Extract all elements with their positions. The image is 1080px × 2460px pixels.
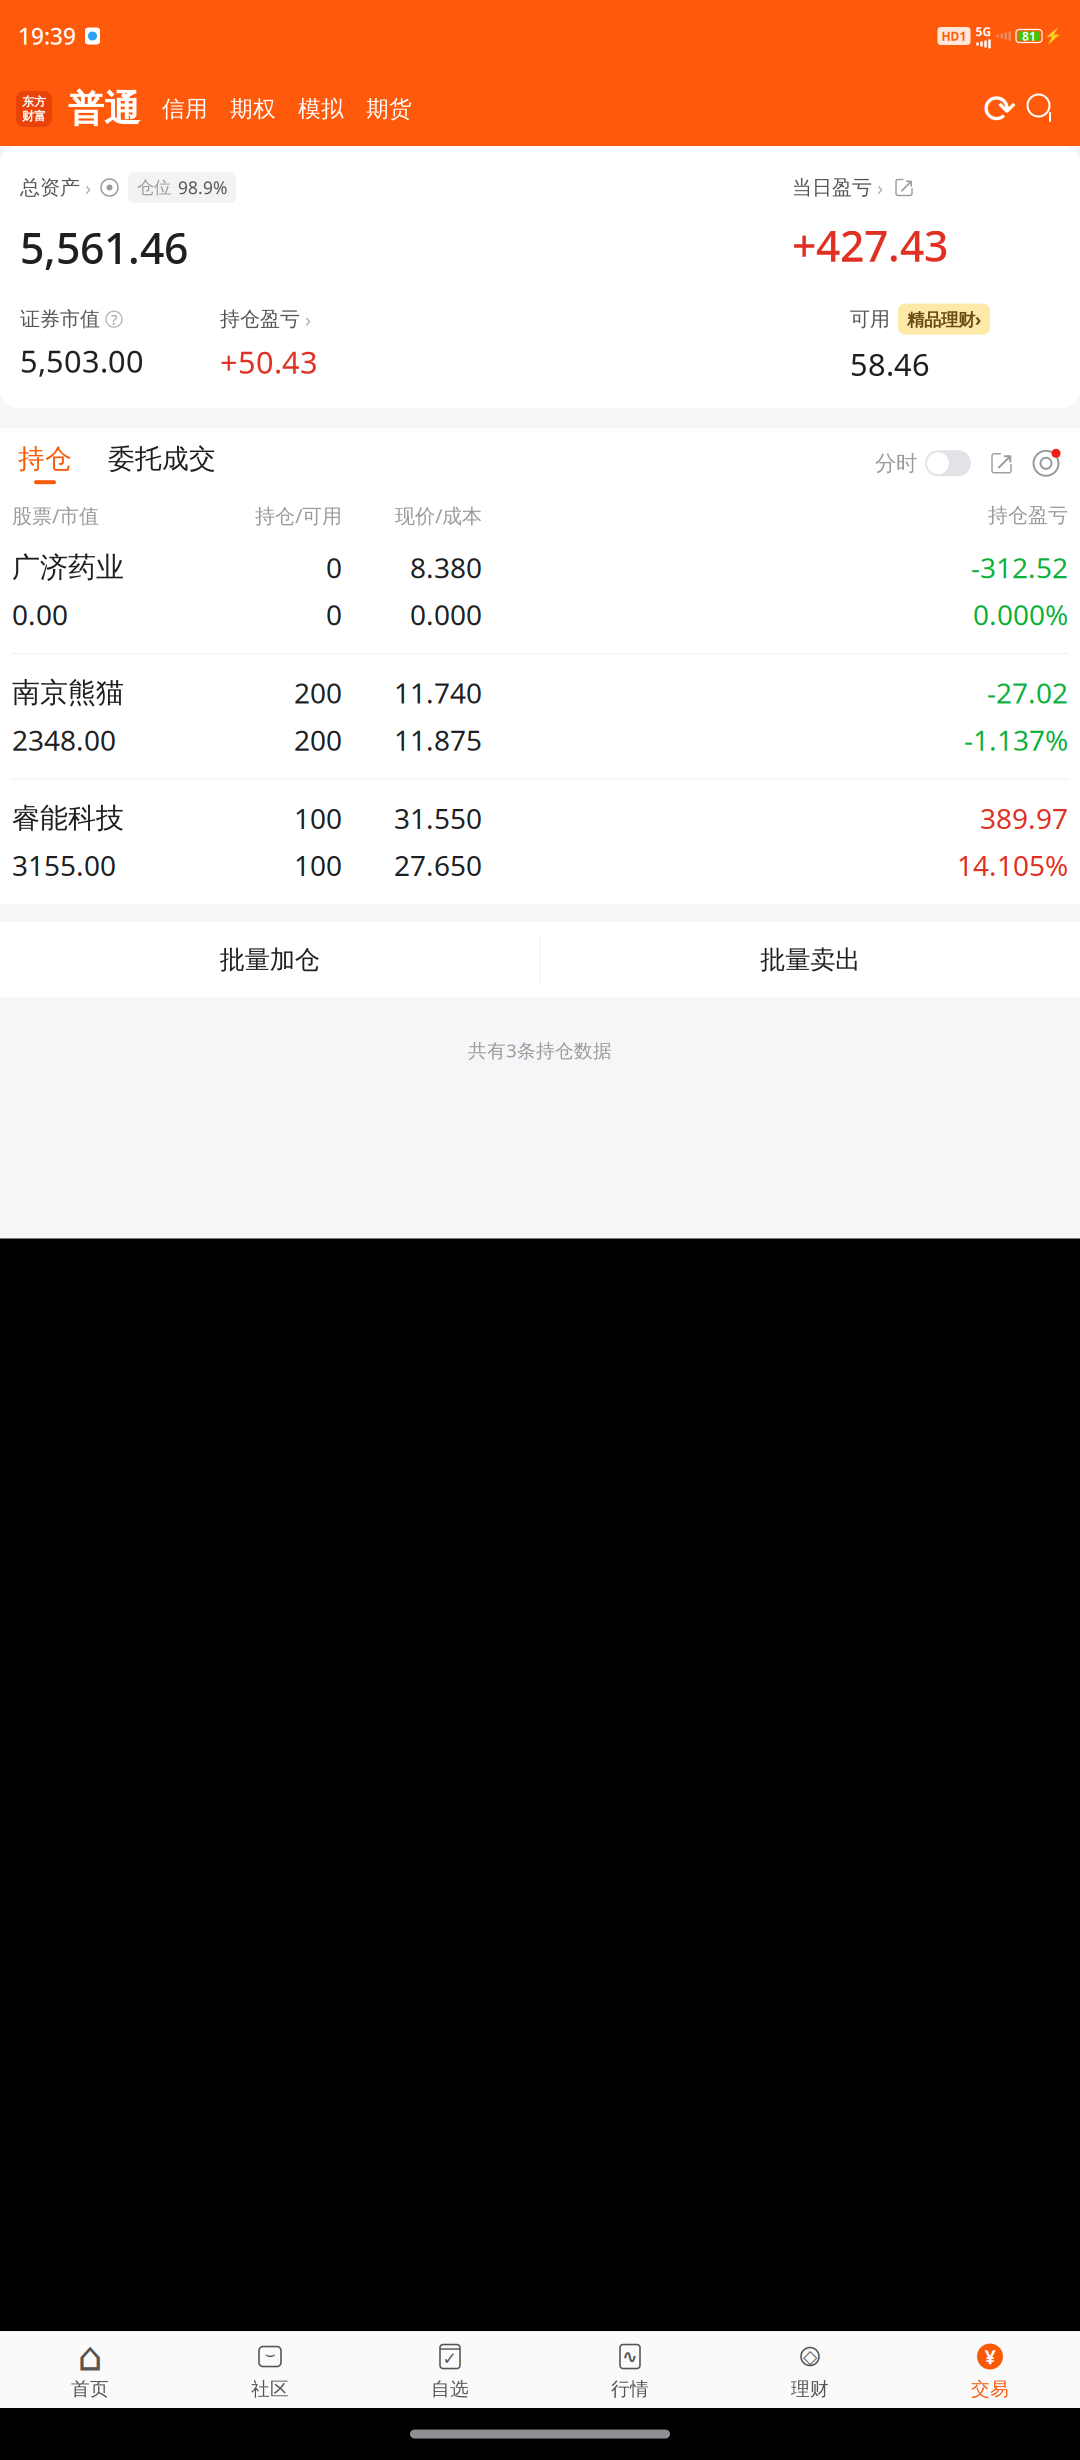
staticText: 14.105% — [957, 847, 1068, 884]
staticText: ↗ — [994, 447, 1014, 474]
staticText: 389.97 — [980, 799, 1068, 837]
staticText: 200 — [294, 674, 342, 711]
button[interactable]: ◇ — [720, 2340, 900, 2402]
staticText: 0.000% — [973, 596, 1068, 633]
staticText: 8.380 — [410, 549, 482, 586]
staticText: 广济药业 — [12, 550, 124, 584]
staticText: 批量卖出 — [760, 944, 860, 975]
staticText: 100 — [294, 799, 342, 837]
button[interactable]: 持仓盈亏 — [220, 306, 400, 382]
staticText: 现价/成本 — [395, 502, 482, 529]
staticText: 仓位 — [137, 177, 171, 198]
staticText: 可用 — [850, 307, 890, 331]
staticText: ⟳ — [983, 86, 1017, 132]
button[interactable]: 广济药业 — [0, 529, 1080, 653]
staticText: -1.137% — [964, 721, 1068, 758]
staticText: 19:39 — [18, 21, 76, 51]
button[interactable]: 信用 — [140, 95, 208, 123]
button[interactable]: 模拟 — [276, 95, 344, 123]
staticText: 证券市值 — [20, 307, 100, 331]
staticText: 社区 — [251, 2377, 289, 2400]
staticText: +50.43 — [220, 341, 318, 382]
staticText: 58.46 — [850, 344, 930, 384]
button[interactable]: 东方财富 — [16, 91, 52, 127]
staticText: 当日盈亏 — [792, 175, 872, 200]
staticText: 0 — [326, 549, 342, 586]
staticText: 11.875 — [394, 721, 482, 758]
staticText: 持仓盈亏 — [220, 307, 300, 331]
staticText: 分时 — [875, 450, 917, 476]
staticText: 3155.00 — [12, 847, 116, 884]
button[interactable]: ∿ — [540, 2340, 720, 2402]
staticText: 精品理财› — [907, 308, 981, 331]
button[interactable]: 委托成交 — [72, 442, 216, 484]
staticText: 共有3条持仓数据 — [468, 1038, 612, 1063]
staticText: 11.740 — [394, 674, 482, 711]
staticText: HD1 — [941, 28, 966, 44]
button[interactable]: 南京熊猫 — [0, 654, 1080, 778]
button[interactable]: 刷新 — [980, 89, 1020, 129]
staticText: ✓ — [442, 2349, 457, 2368]
button[interactable]: 当日盈亏 — [792, 174, 915, 201]
staticText: 批量加仓 — [220, 944, 320, 975]
staticText: ◇ — [803, 2346, 817, 2367]
staticText: 交易 — [971, 2377, 1009, 2400]
staticText: ∿ — [622, 2346, 638, 2367]
button[interactable]: ✓ — [360, 2340, 540, 2402]
staticText: 5,561.46 — [20, 219, 188, 276]
button[interactable]: 期权 — [208, 95, 276, 123]
staticText: 0.00 — [12, 596, 68, 633]
staticText: -312.52 — [971, 549, 1068, 586]
button[interactable]: 精品理财› — [898, 304, 990, 335]
staticText: 27.650 — [394, 847, 482, 884]
staticText: › — [300, 306, 311, 332]
staticText: ↗ — [898, 174, 915, 197]
staticText: 98.9% — [178, 176, 227, 199]
staticText: 81 — [1022, 28, 1036, 44]
staticText: 委托成交 — [108, 442, 216, 475]
staticText: 持仓/可用 — [255, 502, 342, 529]
button[interactable]: 分时 — [875, 450, 971, 476]
button[interactable]: 睿能科技 — [0, 779, 1080, 904]
button[interactable]: ⌣ — [180, 2340, 360, 2402]
staticText: 自选 — [431, 2377, 469, 2400]
staticText: +427.43 — [792, 217, 948, 273]
button[interactable]: 分享 — [971, 451, 1014, 476]
staticText: › — [872, 174, 883, 201]
staticText: 首页 — [71, 2377, 109, 2400]
button[interactable]: 普通 — [52, 87, 140, 131]
button[interactable]: ¥ — [900, 2340, 1080, 2402]
button[interactable]: 设置 — [1014, 447, 1062, 479]
staticText: 0 — [326, 596, 342, 633]
staticText: 31.550 — [394, 799, 482, 837]
staticText: 股票/市值 — [12, 502, 99, 529]
button[interactable]: 批量加仓 — [0, 922, 539, 998]
staticText: 期权 — [230, 95, 276, 123]
button[interactable]: 搜索 — [1020, 87, 1064, 131]
staticText: ⚡ — [1044, 28, 1062, 44]
staticText: 东方 财富 — [22, 94, 46, 124]
staticText: › — [80, 174, 91, 201]
staticText: 2348.00 — [12, 721, 116, 758]
staticText: 南京熊猫 — [12, 675, 124, 710]
button[interactable]: 总资产 — [20, 172, 236, 203]
staticText: 持仓盈亏 — [988, 503, 1068, 528]
button[interactable]: 期货 — [344, 95, 412, 123]
staticText: 期货 — [366, 95, 412, 123]
button[interactable]: 批量卖出 — [540, 922, 1080, 998]
staticText: 100 — [294, 847, 342, 884]
staticText: 5,503.00 — [20, 340, 144, 381]
staticText: 普通 — [68, 87, 140, 131]
button[interactable]: ⌂ — [0, 2340, 180, 2402]
button[interactable]: 持仓 — [18, 442, 72, 484]
staticText: 0.000 — [410, 596, 482, 633]
staticText: 理财 — [791, 2377, 829, 2400]
staticText: ? — [111, 309, 117, 329]
staticText: 总资产 — [20, 175, 80, 200]
staticText: 信用 — [162, 95, 208, 123]
staticText: 持仓 — [18, 442, 72, 475]
staticText: 模拟 — [298, 95, 344, 123]
staticText: 睿能科技 — [12, 801, 124, 835]
staticText: ¥ — [984, 2343, 995, 2370]
staticText: -27.02 — [987, 674, 1068, 711]
